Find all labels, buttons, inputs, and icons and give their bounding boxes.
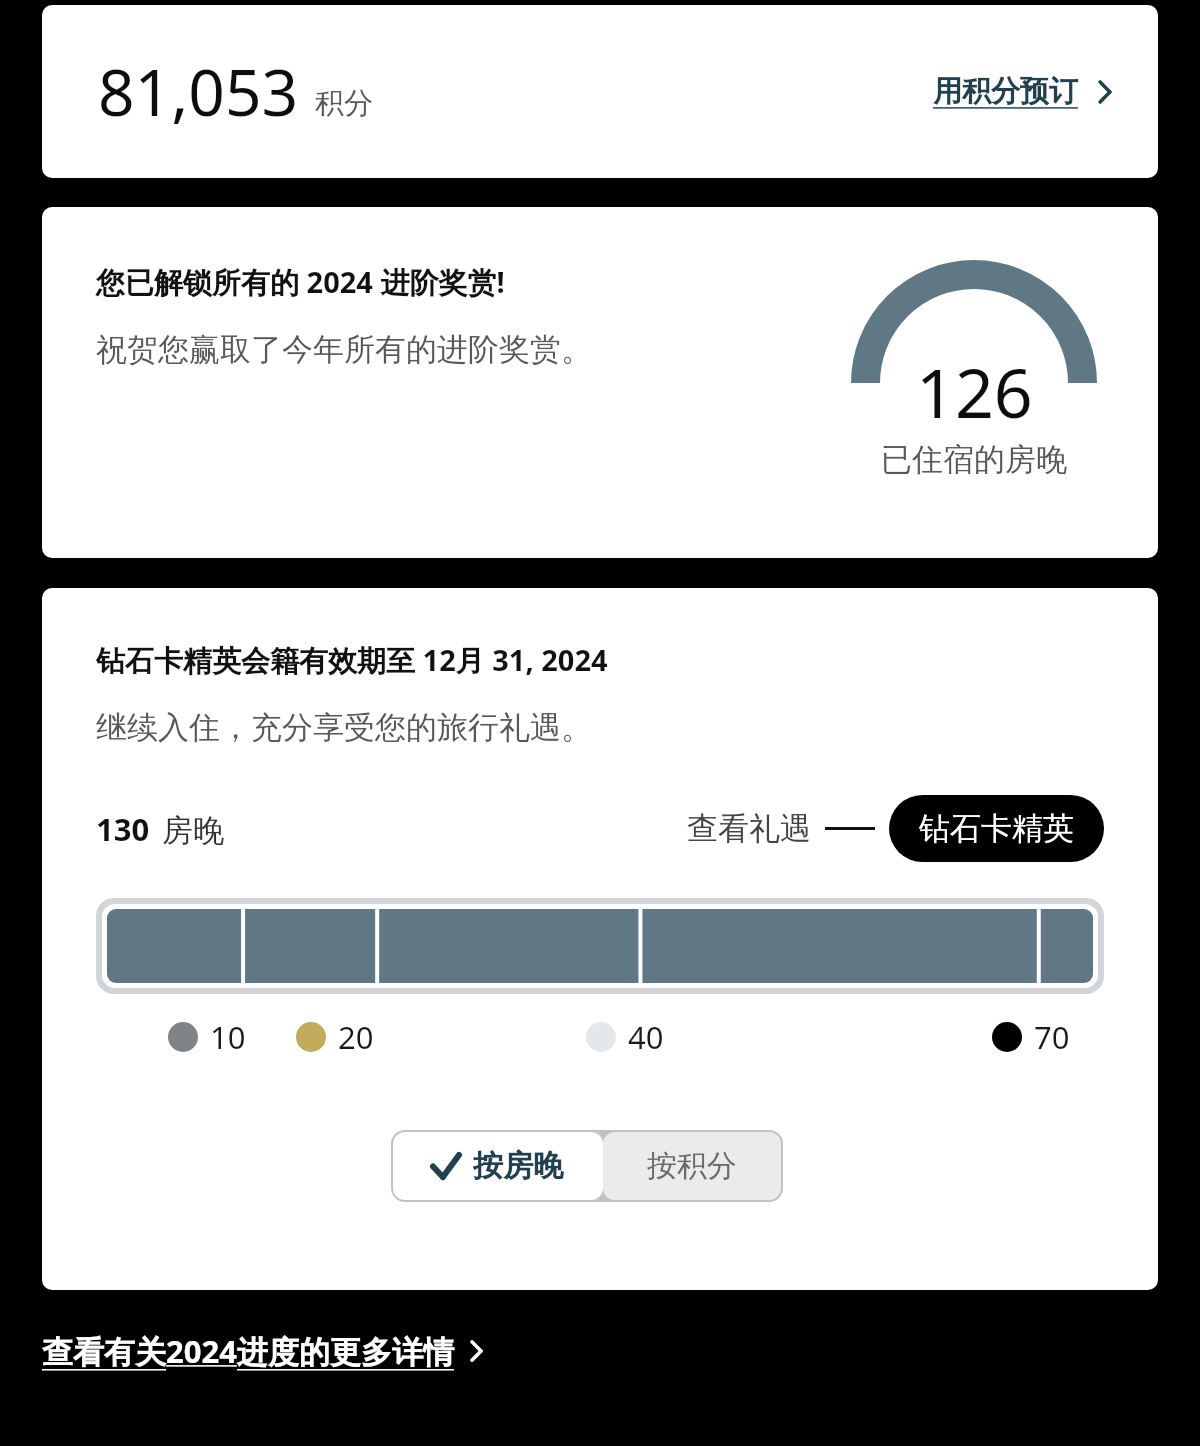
button[interactable]: 查看有关2024进度的更多详情 [42, 1322, 483, 1380]
staticText: 10 [210, 1016, 246, 1058]
staticText: 已住宿的房晚 [881, 440, 1067, 479]
staticText: 81,053 [98, 48, 299, 135]
staticText: 查看礼遇 [687, 809, 811, 848]
staticText: 20 [338, 1016, 374, 1058]
staticText: 钻石卡精英会籍有效期至 12月 31, 2024 [96, 640, 608, 680]
staticText: 您已解锁所有的 2024 进阶奖赏! [96, 262, 505, 302]
staticText: 祝贺您赢取了今年所有的进阶奖赏。 [96, 330, 592, 369]
staticText: 70 [1034, 1016, 1070, 1058]
staticText: 继续入住，充分享受您的旅行礼遇。 [96, 708, 592, 747]
button[interactable]: 用积分预订 [929, 63, 1116, 120]
staticText: 查看有关2024进度的更多详情 [42, 1330, 454, 1372]
staticText: 130 [96, 808, 150, 850]
staticText: 房晚 [162, 811, 224, 850]
button[interactable]: 按积分 [603, 1132, 781, 1200]
staticText: 按房晚 [473, 1147, 563, 1185]
staticText: 40 [628, 1016, 664, 1058]
button[interactable]: 查看礼遇 [687, 795, 1104, 862]
staticText: 积分 [315, 85, 373, 122]
staticText: 钻石卡精英 [919, 809, 1074, 848]
staticText: 用积分预订 [933, 73, 1078, 110]
staticText: 按积分 [647, 1147, 737, 1185]
button[interactable]: 按房晚 [393, 1132, 603, 1200]
staticText: 126 [916, 345, 1033, 438]
